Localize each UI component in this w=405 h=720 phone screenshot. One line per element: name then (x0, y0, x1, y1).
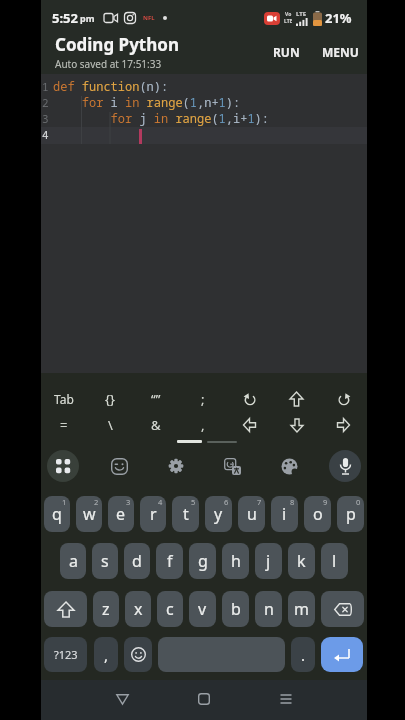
button[interactable] (321, 637, 363, 672)
staticText: LTE (296, 10, 307, 18)
staticText: 6 (224, 497, 229, 507)
staticText: q (52, 503, 62, 525)
button[interactable]: y (205, 496, 232, 532)
button[interactable]: {} (87, 386, 133, 412)
button[interactable]: , (94, 637, 118, 672)
button[interactable] (273, 450, 305, 482)
button[interactable]: t (172, 496, 199, 532)
staticText: for j in range(1,i+1): (53, 110, 270, 126)
button[interactable]: s (92, 543, 118, 579)
button[interactable]: Tab (41, 386, 87, 412)
button[interactable] (102, 684, 142, 714)
button[interactable]: MENU (316, 38, 365, 66)
staticText: 3 (126, 497, 131, 507)
staticText: MENU (322, 44, 359, 60)
staticText: RUN (273, 44, 300, 60)
button[interactable]: u (238, 496, 265, 532)
staticText: u (247, 503, 257, 525)
staticText: a (69, 550, 78, 572)
button[interactable] (47, 450, 79, 482)
staticText: t (183, 503, 189, 525)
button[interactable]: z (93, 591, 119, 627)
button[interactable] (103, 450, 135, 482)
button[interactable]: n (255, 591, 282, 627)
button[interactable]: b (222, 591, 249, 627)
button[interactable] (226, 412, 273, 438)
button[interactable]: e (108, 496, 134, 532)
staticText: 9 (323, 497, 328, 507)
staticText: . (301, 645, 306, 665)
button[interactable] (160, 450, 192, 482)
staticText: d (132, 550, 142, 572)
button[interactable]: c (157, 591, 183, 627)
staticText: 5:52 (52, 9, 78, 27)
staticText: 21% (325, 9, 352, 27)
button[interactable]: ?123 (44, 637, 87, 672)
button[interactable]: x (125, 591, 151, 627)
staticText: , (104, 645, 109, 665)
button[interactable]: ; (179, 386, 226, 412)
button[interactable]: \ (87, 412, 133, 438)
button[interactable] (320, 412, 367, 438)
button[interactable] (226, 386, 273, 412)
button[interactable] (321, 591, 364, 627)
button[interactable] (44, 591, 87, 627)
button[interactable]: q (44, 496, 70, 532)
button[interactable] (320, 386, 367, 412)
button[interactable] (216, 450, 248, 482)
button[interactable]: & (133, 412, 179, 438)
staticText: 7 (257, 497, 262, 507)
staticText: \ (108, 416, 113, 434)
button[interactable]: h (222, 543, 249, 579)
staticText: b (231, 598, 241, 620)
staticText: LTE (284, 18, 293, 25)
button[interactable]: RUN (267, 38, 306, 66)
staticText: , (201, 416, 205, 434)
button[interactable] (158, 637, 285, 672)
staticText: 1 (42, 79, 49, 94)
button[interactable]: m (288, 591, 315, 627)
staticText: n (264, 598, 274, 620)
staticText: y (214, 503, 223, 525)
button[interactable]: d (124, 543, 150, 579)
staticText: pm (80, 12, 95, 24)
staticText: = (60, 416, 68, 434)
staticText: & (151, 416, 161, 434)
button[interactable]: f (156, 543, 183, 579)
button[interactable]: k (288, 543, 315, 579)
staticText: h (231, 550, 241, 572)
button[interactable] (273, 386, 320, 412)
button[interactable]: = (41, 412, 87, 438)
button[interactable] (266, 684, 306, 714)
staticText: z (102, 598, 110, 620)
button[interactable]: j (255, 543, 282, 579)
button[interactable]: o (304, 496, 331, 532)
button[interactable]: r (140, 496, 166, 532)
staticText: Coding Python (55, 33, 179, 56)
staticText: “” (151, 390, 161, 408)
button[interactable]: w (76, 496, 102, 532)
button[interactable]: i (271, 496, 298, 532)
button[interactable]: v (189, 591, 216, 627)
button[interactable] (273, 412, 320, 438)
button[interactable]: . (291, 637, 315, 672)
staticText: 4 (42, 127, 49, 142)
staticText: w (83, 503, 96, 525)
staticText: Tab (54, 391, 74, 407)
button[interactable] (184, 684, 224, 714)
staticText: 2 (42, 95, 49, 110)
button[interactable] (329, 450, 361, 482)
button[interactable]: , (179, 412, 226, 438)
button[interactable]: g (189, 543, 216, 579)
button[interactable]: a (60, 543, 86, 579)
staticText: 1 (62, 497, 67, 507)
button[interactable] (124, 637, 152, 672)
staticText: Vo (285, 11, 292, 18)
staticText: {} (105, 390, 115, 408)
button[interactable]: l (321, 543, 348, 579)
staticText: 8 (290, 497, 295, 507)
button[interactable]: p (337, 496, 364, 532)
button[interactable]: “” (133, 386, 179, 412)
staticText: Auto saved at 17:51:33 (55, 57, 162, 71)
staticText: f (167, 550, 173, 572)
